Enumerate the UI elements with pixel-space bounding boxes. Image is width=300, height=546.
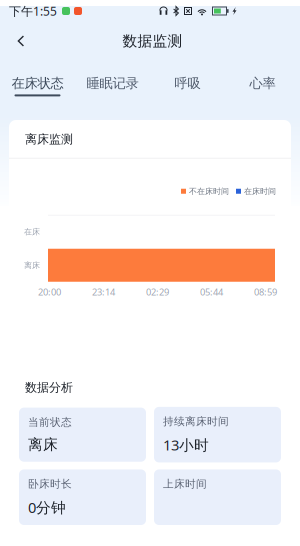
staticText: 数据分析 bbox=[25, 380, 73, 395]
staticText: 23:14 bbox=[92, 286, 115, 298]
button[interactable]: Back bbox=[5, 26, 37, 56]
staticText: 心率 bbox=[249, 75, 275, 91]
staticText: 数据监测 bbox=[122, 32, 182, 50]
staticText: 当前状态 bbox=[28, 416, 72, 429]
staticText: 在床 bbox=[24, 227, 40, 237]
staticText: 持续离床时间 bbox=[163, 415, 229, 428]
staticText: 08:59 bbox=[254, 286, 277, 298]
staticText: 20:00 bbox=[38, 286, 61, 298]
staticText: 05:44 bbox=[200, 286, 223, 298]
staticText: 02:29 bbox=[146, 286, 169, 298]
staticText: 睡眠记录 bbox=[86, 75, 138, 91]
staticText: 0分钟 bbox=[28, 498, 66, 517]
button[interactable]: 在床状态 bbox=[0, 60, 75, 100]
staticText: 上床时间 bbox=[163, 477, 207, 491]
staticText: 下午1:55 bbox=[9, 3, 57, 19]
button[interactable]: 呼吸 bbox=[150, 60, 225, 100]
button[interactable]: 睡眠记录 bbox=[75, 60, 150, 100]
staticText: 离床监测 bbox=[25, 132, 73, 147]
staticText: 离床 bbox=[24, 260, 40, 270]
staticText: 卧床时长 bbox=[28, 477, 72, 491]
staticText: 离床 bbox=[28, 436, 58, 454]
staticText: 呼吸 bbox=[174, 75, 200, 91]
staticText: 13小时 bbox=[163, 435, 209, 454]
staticText: 在床状态 bbox=[11, 75, 63, 91]
button[interactable]: 心率 bbox=[225, 60, 300, 100]
staticText: 在床时间 bbox=[244, 186, 276, 196]
staticText: 不在床时间 bbox=[189, 186, 229, 196]
